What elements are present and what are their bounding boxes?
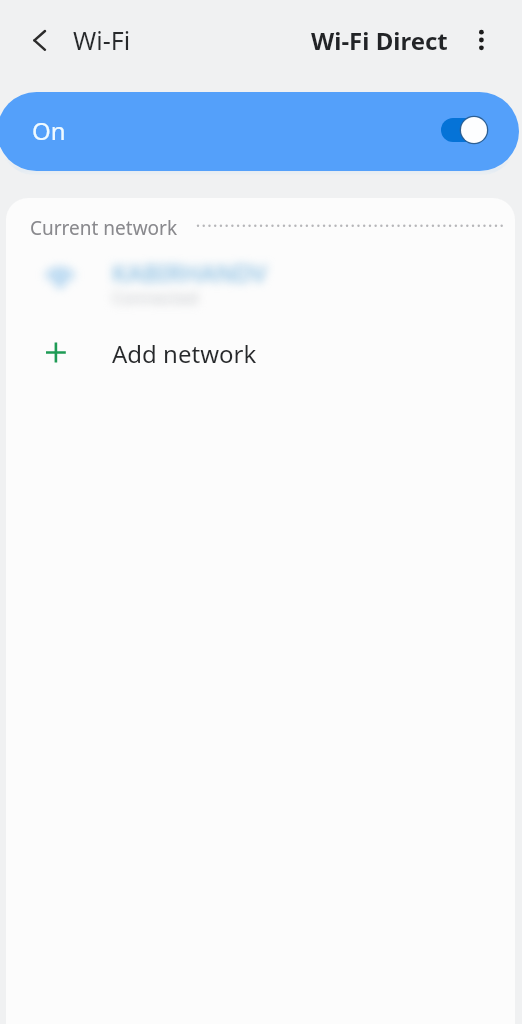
button[interactable]: Navigate up bbox=[18, 22, 55, 59]
button[interactable]: Add network bbox=[6, 318, 515, 390]
staticText: Wi-Fi bbox=[73, 23, 131, 57]
staticText: Current network bbox=[30, 215, 178, 241]
staticText: KABIRHANDV bbox=[112, 256, 267, 289]
button[interactable]: On bbox=[0, 92, 519, 171]
button[interactable]: Connected network bbox=[6, 242, 515, 318]
staticText: On bbox=[32, 114, 66, 147]
staticText: Add network bbox=[112, 337, 257, 370]
staticText: Connected bbox=[112, 286, 198, 309]
button[interactable]: Wi-Fi Direct bbox=[311, 24, 448, 57]
button[interactable]: More options bbox=[462, 20, 502, 60]
